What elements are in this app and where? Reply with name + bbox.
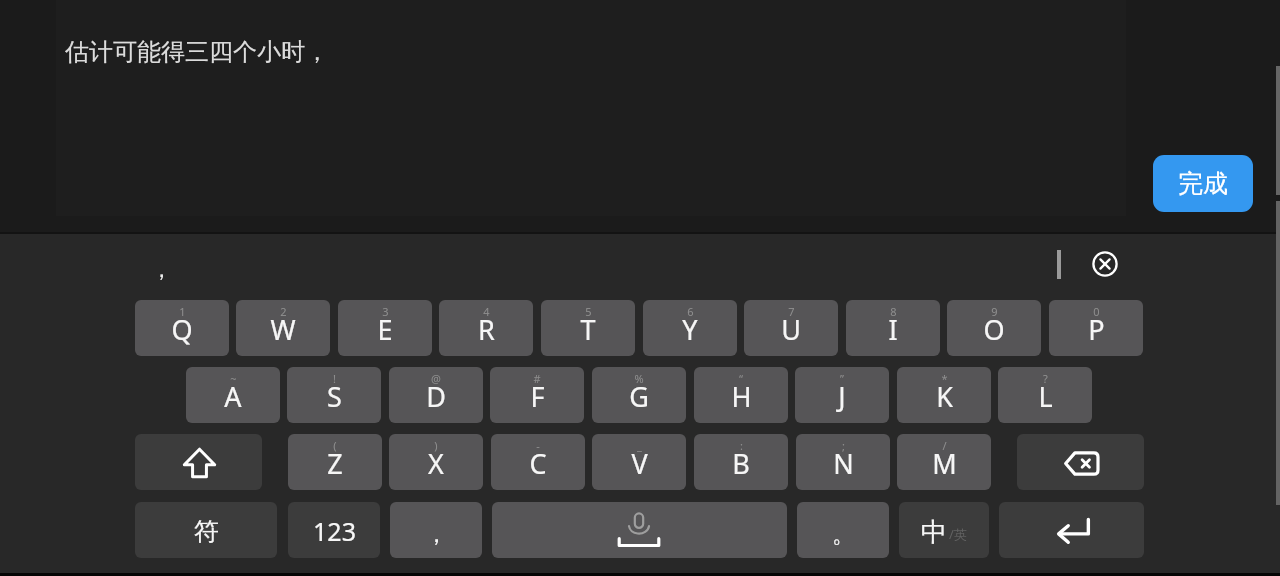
staticText: : xyxy=(740,438,743,453)
staticText: N xyxy=(833,445,854,482)
staticText: 9 xyxy=(991,304,998,319)
button[interactable] xyxy=(947,300,1041,356)
staticText: ， xyxy=(151,257,172,283)
staticText: C xyxy=(529,445,547,482)
button[interactable] xyxy=(389,367,483,423)
staticText: K xyxy=(936,378,953,415)
staticText: ? xyxy=(1043,371,1048,386)
button[interactable]: Hide keyboard xyxy=(1087,246,1123,282)
button[interactable] xyxy=(338,300,432,356)
staticText: - xyxy=(536,438,540,453)
button[interactable] xyxy=(236,300,330,356)
button[interactable] xyxy=(56,0,1126,216)
button[interactable] xyxy=(846,300,940,356)
staticText: ; xyxy=(842,438,845,453)
staticText: P xyxy=(1088,311,1105,348)
staticText: 8 xyxy=(890,304,897,319)
staticText: X xyxy=(428,445,444,482)
staticText: 7 xyxy=(788,304,795,319)
button[interactable] xyxy=(897,367,991,423)
staticText: ， xyxy=(425,520,448,549)
button[interactable] xyxy=(288,434,382,490)
staticText: E xyxy=(377,311,393,348)
button[interactable] xyxy=(491,434,585,490)
staticText: ( xyxy=(333,438,337,453)
staticText: Y xyxy=(682,311,698,348)
staticText: Q xyxy=(171,311,193,348)
staticText: S xyxy=(327,378,342,415)
button[interactable] xyxy=(592,367,686,423)
button[interactable] xyxy=(541,300,635,356)
button[interactable]: Enter xyxy=(999,502,1144,558)
staticText: B xyxy=(732,445,750,482)
button[interactable] xyxy=(592,434,686,490)
staticText: L xyxy=(1038,378,1053,415)
staticText: ! xyxy=(333,371,336,386)
staticText: % xyxy=(634,371,644,386)
button[interactable] xyxy=(390,502,482,558)
staticText: / xyxy=(942,438,947,453)
staticText: ) xyxy=(434,438,438,453)
staticText: 0 xyxy=(1093,304,1100,319)
staticText: 1 xyxy=(179,304,186,319)
staticText: * xyxy=(941,371,948,386)
staticText: T xyxy=(580,311,596,348)
staticText: 完成 xyxy=(1178,168,1228,199)
button[interactable] xyxy=(744,300,838,356)
button[interactable] xyxy=(439,300,533,356)
staticText: 6 xyxy=(687,304,694,319)
staticText: @ xyxy=(431,371,441,386)
button[interactable]: 完成 xyxy=(1153,155,1253,212)
staticText: F xyxy=(530,378,545,415)
button[interactable]: Switch Chinese English input xyxy=(899,502,989,558)
staticText: 123 xyxy=(313,514,356,548)
button[interactable]: Space xyxy=(492,502,787,558)
staticText: 中 xyxy=(921,516,947,549)
staticText: G xyxy=(629,378,649,415)
staticText: ~ xyxy=(230,371,237,386)
staticText: W xyxy=(270,311,296,348)
staticText: _ xyxy=(637,438,642,453)
staticText: /英 xyxy=(949,525,967,543)
button[interactable] xyxy=(797,502,889,558)
staticText: M xyxy=(932,445,957,482)
staticText: H xyxy=(731,378,752,415)
button[interactable] xyxy=(287,367,381,423)
staticText: # xyxy=(533,371,541,386)
staticText: J xyxy=(838,378,846,415)
staticText: D xyxy=(426,378,446,415)
button[interactable] xyxy=(1049,300,1143,356)
button[interactable] xyxy=(796,434,890,490)
button[interactable] xyxy=(135,502,277,558)
staticText: 4 xyxy=(483,304,490,319)
button[interactable] xyxy=(389,434,483,490)
staticText: V xyxy=(631,445,648,482)
button[interactable]: Backspace xyxy=(1017,434,1144,490)
staticText: 3 xyxy=(382,304,389,319)
staticText: Z xyxy=(327,445,343,482)
button[interactable]: Shift xyxy=(135,434,262,490)
button[interactable] xyxy=(186,367,280,423)
staticText: 估计可能得三四个小时， xyxy=(65,37,329,67)
staticText: O xyxy=(983,311,1005,348)
staticText: “ xyxy=(739,371,743,386)
staticText: R xyxy=(478,311,495,348)
staticText: 。 xyxy=(832,520,855,549)
button[interactable] xyxy=(694,434,788,490)
staticText: 5 xyxy=(585,304,592,319)
staticText: U xyxy=(781,311,801,348)
button[interactable] xyxy=(795,367,889,423)
button[interactable] xyxy=(288,502,380,558)
button[interactable] xyxy=(998,367,1092,423)
staticText: 符 xyxy=(194,516,219,547)
button[interactable] xyxy=(694,367,788,423)
staticText: I xyxy=(888,311,898,348)
staticText: ” xyxy=(840,371,844,386)
button[interactable] xyxy=(897,434,991,490)
staticText: 2 xyxy=(280,304,287,319)
button[interactable] xyxy=(135,300,229,356)
button[interactable] xyxy=(643,300,737,356)
staticText: A xyxy=(224,378,242,415)
button[interactable] xyxy=(490,367,584,423)
